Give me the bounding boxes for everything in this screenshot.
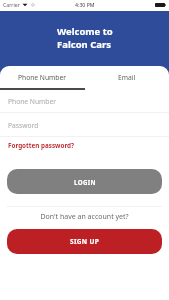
button[interactable]: Phone Number xyxy=(0,91,169,112)
button[interactable]: SIGN UP xyxy=(7,229,162,254)
staticText: Forgotten password? xyxy=(8,141,75,150)
staticText: Carrier xyxy=(3,1,20,8)
staticText: Welcome to xyxy=(57,25,113,38)
button[interactable]: LOGIN xyxy=(7,169,162,194)
staticText: Don't have an account yet? xyxy=(0,212,169,222)
staticText: Phone Number xyxy=(8,97,56,106)
button[interactable]: Forgotten password? xyxy=(6,138,77,152)
staticText: Falcon Cars xyxy=(57,38,112,51)
button[interactable]: Password xyxy=(0,114,169,136)
staticText: Password xyxy=(8,121,39,130)
staticText: SIGN UP xyxy=(70,237,100,246)
button[interactable]: Phone Number xyxy=(0,66,84,89)
staticText: 4:30 PM xyxy=(75,1,95,8)
staticText: Email xyxy=(118,73,136,82)
staticText: Phone Number xyxy=(18,73,66,82)
staticText: LOGIN xyxy=(74,178,96,186)
other: Wi-Fi xyxy=(22,2,28,8)
button[interactable]: Email xyxy=(84,66,169,89)
